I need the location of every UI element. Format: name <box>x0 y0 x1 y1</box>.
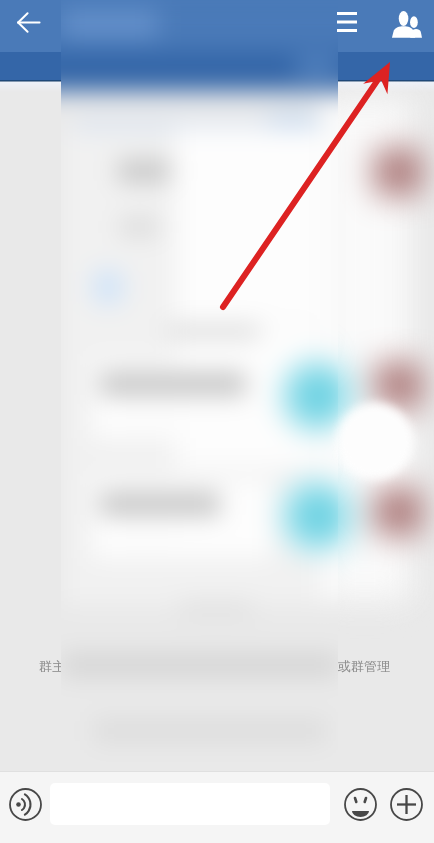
staticText: 或群管理 <box>338 658 390 674</box>
staticText: 群主是 <box>39 658 61 674</box>
button[interactable]: Emoji <box>338 782 382 826</box>
button[interactable]: More options <box>384 782 428 826</box>
button[interactable]: Group members <box>384 0 428 44</box>
button[interactable]: Menu <box>325 0 369 44</box>
button[interactable]: Voice input <box>3 782 47 826</box>
button[interactable]: Back <box>6 0 50 44</box>
